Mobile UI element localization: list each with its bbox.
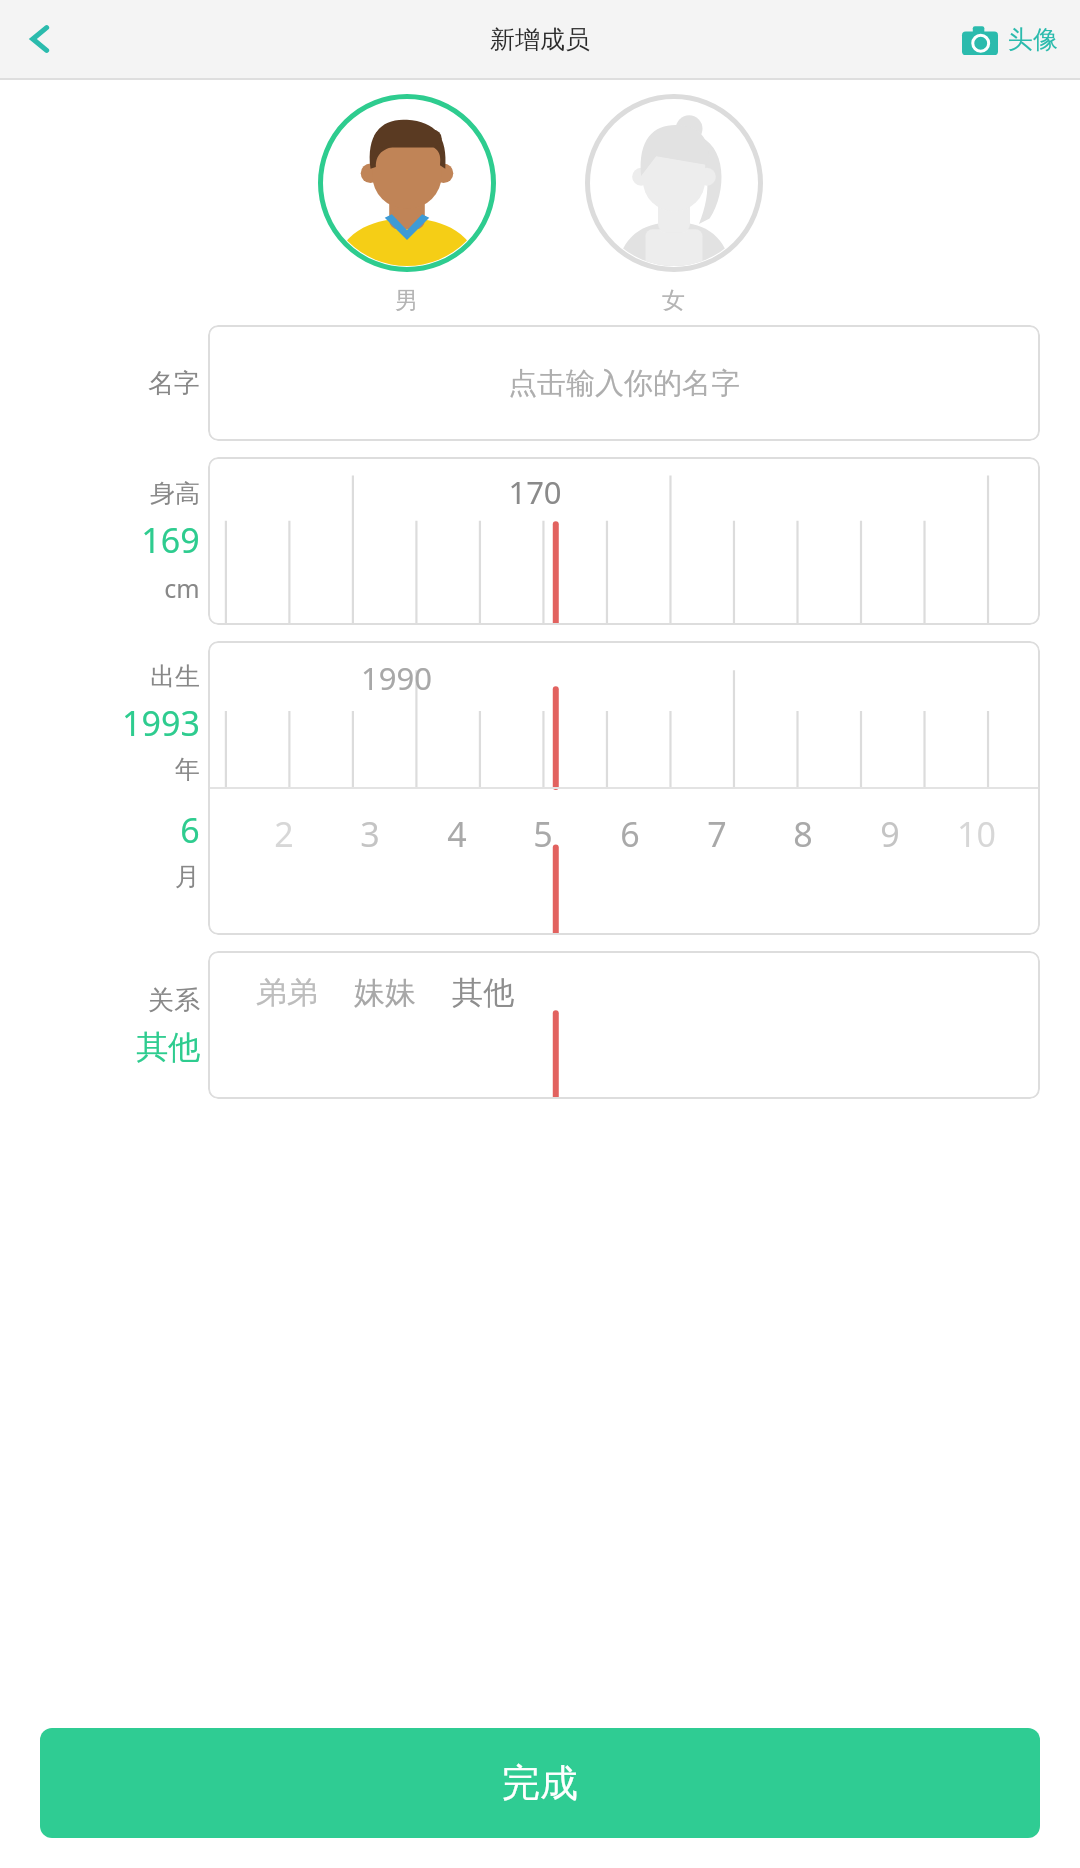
staticText: 2	[274, 811, 294, 857]
staticText: 身高	[150, 478, 200, 509]
staticText: 月	[175, 861, 200, 892]
button[interactable]: 头像	[958, 18, 1062, 61]
staticText: 女	[662, 286, 685, 315]
staticText: 年	[175, 754, 200, 785]
staticText: 1993	[122, 700, 200, 746]
staticText: 点击输入你的名字	[508, 365, 740, 402]
button[interactable]: 1990	[208, 641, 1040, 787]
staticText: 其他	[452, 973, 514, 1012]
button[interactable]: 2	[208, 789, 1040, 935]
button[interactable]: Female	[571, 94, 776, 315]
button[interactable]: 170	[208, 457, 1040, 625]
staticText: cm	[164, 571, 200, 605]
staticText: 170	[508, 471, 562, 513]
staticText: 6	[180, 807, 200, 853]
staticText: 妹妹	[354, 973, 416, 1012]
staticText: 出生	[150, 661, 200, 692]
staticText: 关系	[148, 984, 200, 1017]
staticText: 7	[707, 811, 727, 857]
staticText: 10	[957, 811, 996, 857]
staticText: 169	[141, 517, 200, 563]
button[interactable]: Back	[8, 7, 72, 71]
staticText: 男	[395, 286, 418, 315]
staticText: 6	[620, 811, 640, 857]
staticText: 弟弟	[256, 973, 318, 1012]
staticText: 名字	[148, 367, 200, 400]
staticText: 头像	[1008, 24, 1058, 55]
staticText: 其他	[136, 1027, 200, 1067]
button[interactable]: Male	[304, 94, 509, 315]
staticText: 9	[880, 811, 900, 857]
staticText: 5	[533, 811, 553, 857]
button[interactable]: 点击输入你的名字	[208, 325, 1040, 441]
staticText: 4	[447, 811, 467, 857]
staticText: 8	[793, 811, 813, 857]
staticText: 1990	[361, 657, 432, 699]
staticText: 新增成员	[490, 24, 590, 55]
button[interactable]: 完成	[40, 1728, 1040, 1838]
staticText: 3	[360, 811, 380, 857]
staticText: 完成	[502, 1759, 578, 1807]
button[interactable]: 弟弟	[208, 951, 1040, 1099]
